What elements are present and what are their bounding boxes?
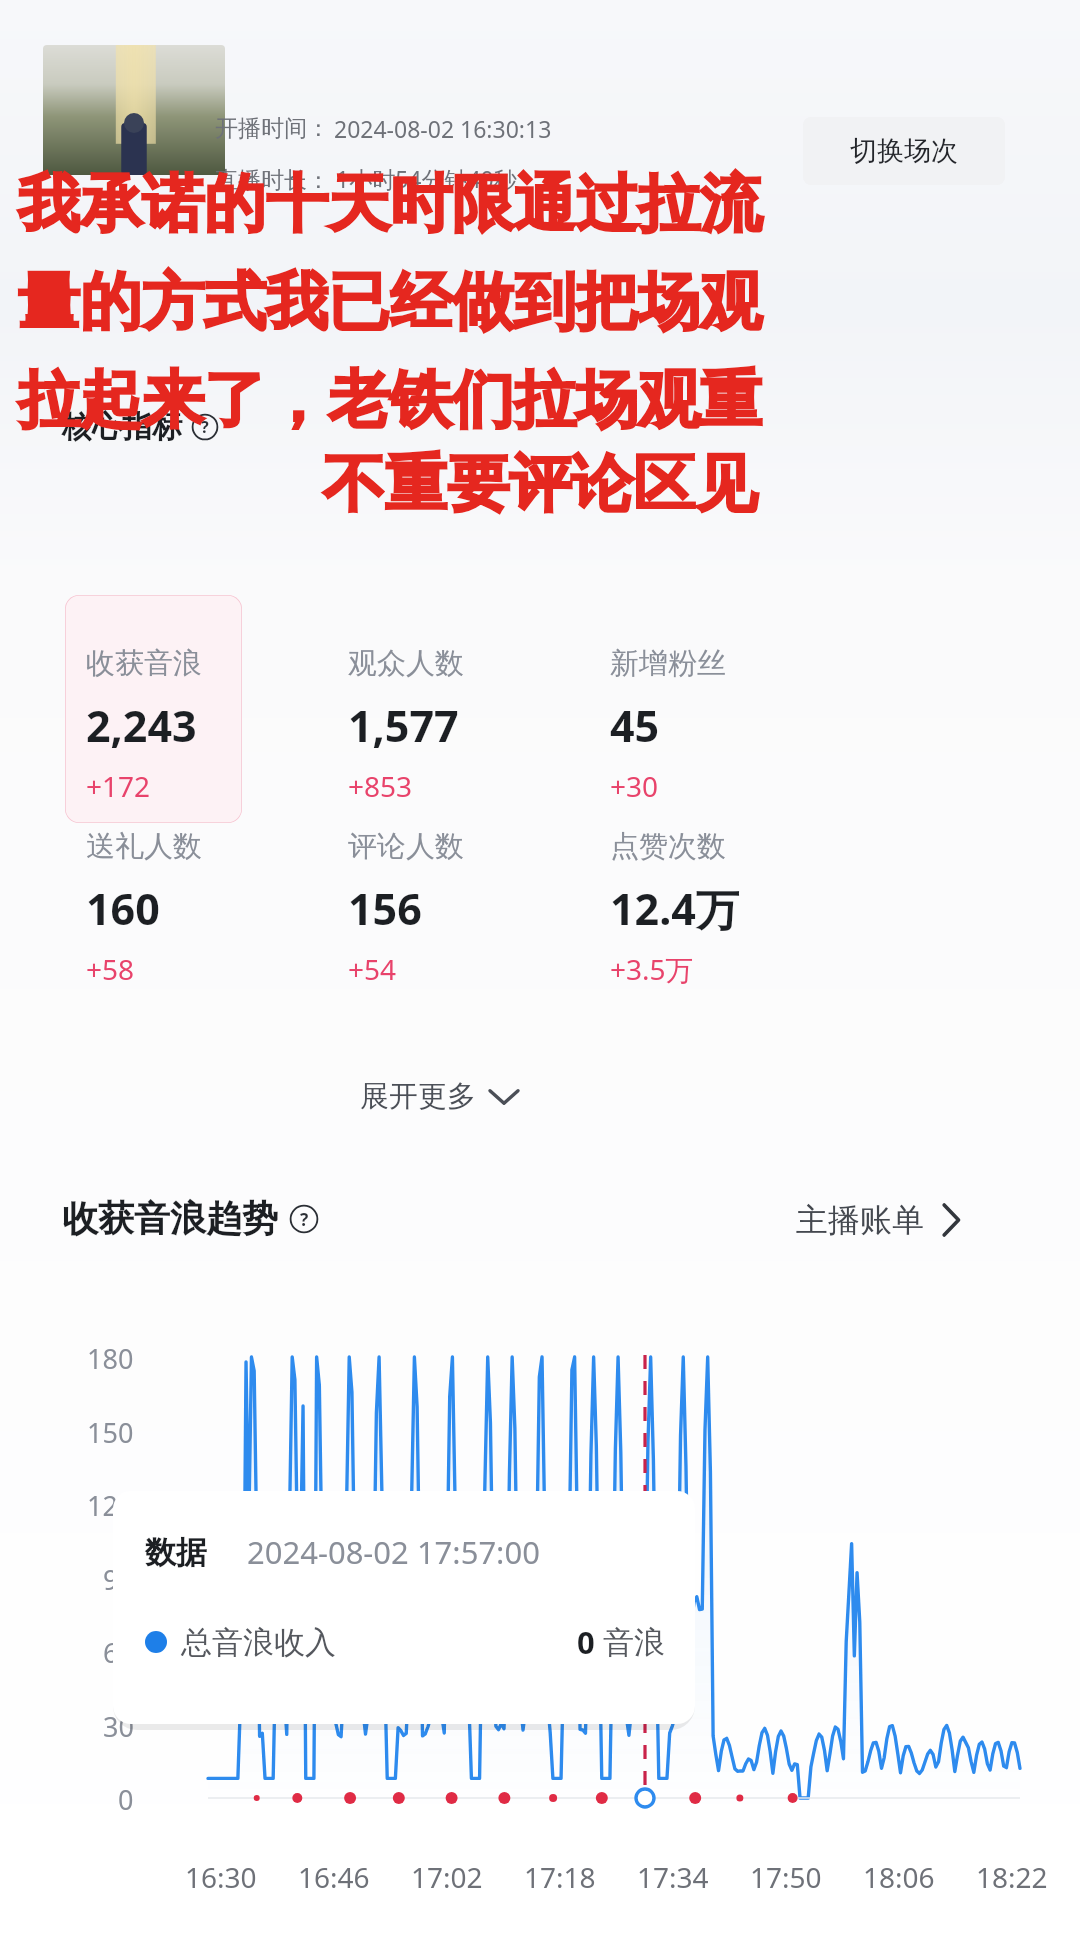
staticText: 观众人数 xyxy=(348,645,464,682)
staticText: 切换场次 xyxy=(850,134,958,168)
staticText: 120 xyxy=(87,1487,134,1524)
staticText: +54 xyxy=(348,950,397,988)
staticText: 60 xyxy=(103,1634,134,1671)
button[interactable]: 观众人数 xyxy=(348,645,464,805)
button[interactable]: 切换场次 xyxy=(803,117,1005,185)
button[interactable]: 主播账单 xyxy=(790,1196,966,1244)
staticText: 新增粉丝 xyxy=(610,645,726,682)
button[interactable]: 送礼人数 xyxy=(86,828,202,988)
staticText: 主播账单 xyxy=(796,1200,924,1240)
staticText: +58 xyxy=(86,950,135,988)
staticText: 0 xyxy=(118,1781,134,1818)
staticText: ? xyxy=(201,416,209,438)
staticText: 送礼人数 xyxy=(86,828,202,865)
staticText: ? xyxy=(300,1207,309,1231)
staticText: 150 xyxy=(87,1414,134,1451)
button[interactable] xyxy=(65,595,242,823)
staticText: 12.4万 xyxy=(610,879,739,938)
staticText: 2024-08-02 17:57:00 xyxy=(247,1531,540,1573)
staticText: +172 xyxy=(86,767,151,805)
staticText: 直播时长： 1小时54分钟40秒 xyxy=(215,163,517,194)
staticText: 1,577 xyxy=(348,696,459,755)
staticText: 收获音浪 xyxy=(86,645,202,682)
staticText: 17:18 xyxy=(524,1858,596,1896)
staticText: 30 xyxy=(103,1708,134,1745)
staticText: 156 xyxy=(348,879,422,938)
staticText: 0 xyxy=(577,1621,595,1663)
staticText: 总音浪收入 xyxy=(181,1623,336,1662)
staticText: +853 xyxy=(348,767,413,805)
staticText: 收获音浪趋势 xyxy=(62,1196,278,1241)
staticText: 不重要评论区见 xyxy=(323,445,757,523)
staticText: 评论人数 xyxy=(348,828,464,865)
staticText: 16:30 xyxy=(185,1858,257,1896)
staticText: 18:22 xyxy=(976,1858,1048,1896)
staticText: 量的方式我已经做到把场观 xyxy=(18,263,762,341)
staticText: +30 xyxy=(610,767,659,805)
button[interactable]: 新增粉丝 xyxy=(610,645,726,805)
staticText: 2024-08-02 16:30:13 xyxy=(334,113,552,144)
staticText: 拉起来了，老铁们拉场观重 xyxy=(18,361,762,439)
button[interactable]: 点赞次数 xyxy=(610,828,739,988)
staticText: 17:50 xyxy=(750,1858,822,1896)
staticText: 核心指标 xyxy=(62,408,182,446)
staticText: 数据 xyxy=(145,1533,207,1572)
staticText: 16:46 xyxy=(298,1858,370,1896)
staticText: 开播时间： xyxy=(215,114,330,143)
staticText: 45 xyxy=(610,696,660,755)
button[interactable]: 展开更多 xyxy=(352,1072,526,1121)
button[interactable]: 评论人数 xyxy=(348,828,464,988)
staticText: 18:06 xyxy=(863,1858,935,1896)
staticText: 160 xyxy=(86,879,160,938)
staticText: +3.5万 xyxy=(610,950,694,988)
staticText: 展开更多 xyxy=(360,1078,476,1115)
staticText: 17:02 xyxy=(411,1858,483,1896)
staticText: 我承诺的十天时限通过拉流 xyxy=(18,165,762,243)
staticText: 17:34 xyxy=(637,1858,709,1896)
button[interactable]: 收获音浪 xyxy=(86,645,202,805)
staticText: 音浪 xyxy=(603,1623,665,1662)
staticText: 2,243 xyxy=(86,696,197,755)
staticText: 180 xyxy=(87,1340,134,1377)
staticText: 点赞次数 xyxy=(610,828,726,865)
staticText: 90 xyxy=(103,1561,134,1598)
